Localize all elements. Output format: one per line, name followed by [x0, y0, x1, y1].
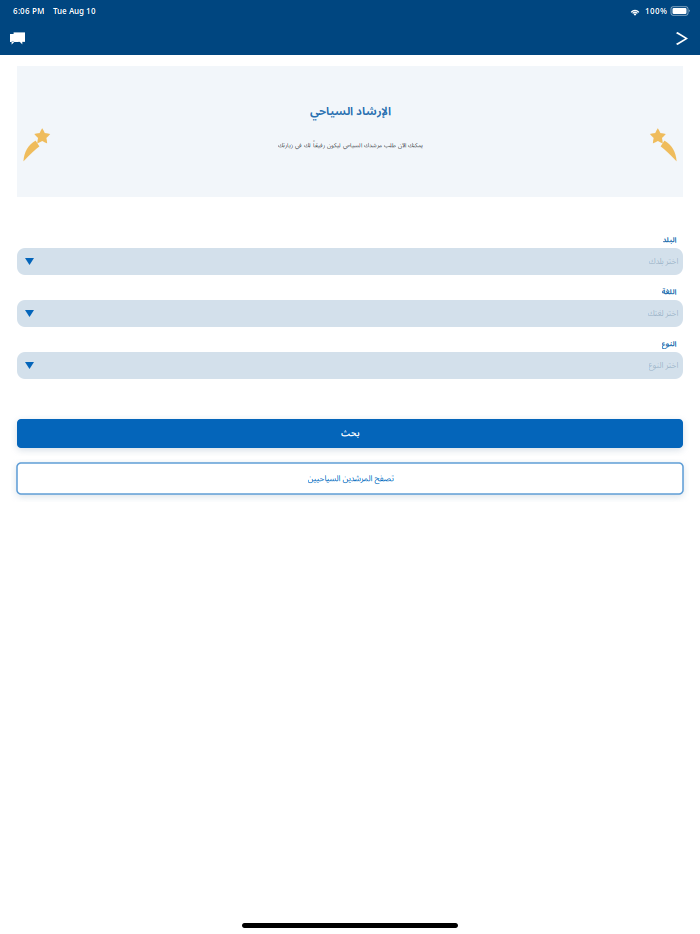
staticText: اللغة — [661, 284, 676, 300]
staticText: البلد — [662, 232, 676, 248]
button[interactable]: تصفح المرشدين السياحيين — [17, 463, 683, 494]
button[interactable]: اختر بلدك — [17, 248, 683, 275]
staticText: 100% — [645, 6, 667, 16]
staticText: الإرشاد السياحي — [309, 99, 390, 123]
button[interactable]: Messages — [2, 22, 33, 55]
staticText: تصفح المرشدين السياحيين — [307, 470, 393, 487]
button[interactable]: بحث — [17, 419, 683, 448]
staticText: 6:06 PM — [13, 6, 44, 16]
staticText: اختر بلدك — [648, 253, 678, 270]
staticText: اختر النوع — [648, 357, 678, 374]
button[interactable]: اختر لغتك — [17, 300, 683, 327]
staticText: يمكنك الآن طلب مرشدك السياحي ليكون رفيقا… — [277, 139, 422, 152]
button[interactable]: Back — [666, 22, 698, 55]
staticText: النوع — [661, 336, 676, 352]
staticText: اختر لغتك — [647, 305, 678, 322]
button[interactable]: اختر النوع — [17, 352, 683, 379]
staticText: Tue Aug 10 — [53, 6, 96, 16]
staticText: بحث — [340, 424, 359, 442]
